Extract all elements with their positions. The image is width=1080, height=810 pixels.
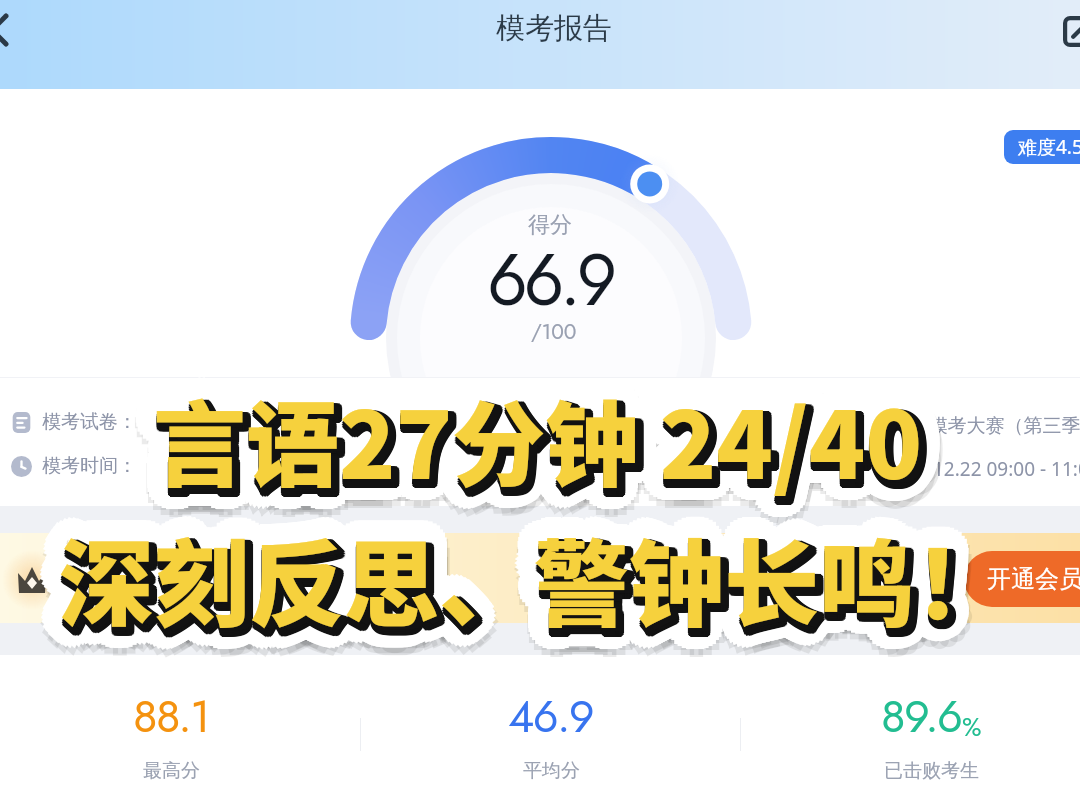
staticText: 46.9: [508, 684, 594, 749]
staticText: 得分: [528, 211, 572, 239]
staticText: 最高分: [143, 759, 200, 783]
button[interactable]: Back: [0, 6, 30, 58]
staticText: 89.6: [881, 684, 962, 749]
button[interactable]: 开通会员: [987, 551, 1080, 607]
staticText: 已击败考生: [884, 759, 979, 783]
staticText: 88.1: [133, 684, 209, 749]
button[interactable]: 开通会员: [0, 533, 1080, 623]
staticText: 平均分: [523, 759, 580, 783]
button[interactable]: Share: [1063, 16, 1080, 47]
staticText: /100: [531, 317, 577, 347]
button[interactable]: 46.9: [361, 655, 741, 810]
button[interactable]: 难度4.5: [1018, 130, 1080, 164]
button[interactable]: 88.1: [0, 655, 361, 810]
staticText: 2024公考模考大赛（第三季）: [847, 412, 1080, 438]
button[interactable]: 89.6: [741, 655, 1080, 810]
staticText: 12.22 09:00 - 11:00: [933, 456, 1080, 482]
staticText: 模考时间：: [42, 454, 137, 478]
staticText: 开通会员: [987, 564, 1080, 594]
staticText: %: [962, 708, 982, 746]
staticText: 模考试卷：: [42, 410, 137, 434]
button[interactable]: 模考试卷：: [11, 406, 137, 438]
staticText: 模考报告: [496, 10, 612, 47]
staticText: 难度4.5: [1018, 134, 1080, 160]
button[interactable]: 模考时间：: [11, 450, 137, 482]
staticText: 66.9: [487, 229, 613, 332]
